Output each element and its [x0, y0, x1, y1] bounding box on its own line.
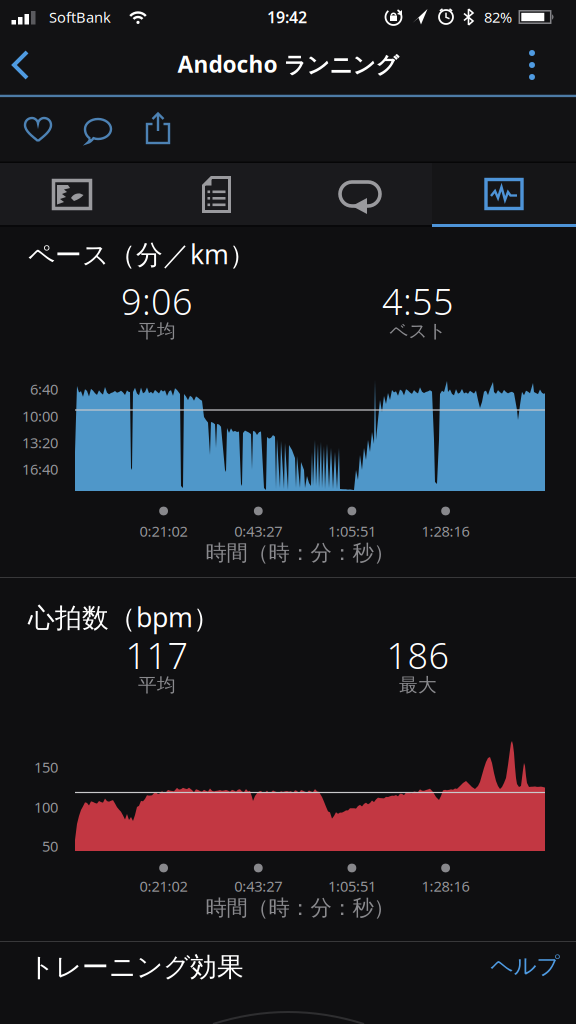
staticText: 10:00: [22, 406, 58, 426]
button[interactable]: Share: [136, 107, 180, 151]
staticText: 0:21:02: [140, 876, 188, 896]
staticText: 19:42: [267, 6, 307, 28]
staticText: 13:20: [22, 433, 58, 452]
button[interactable]: More: [517, 44, 547, 86]
button[interactable]: Stats: [144, 164, 288, 224]
staticText: 6:40: [30, 379, 58, 399]
staticText: SoftBank: [49, 7, 111, 27]
button[interactable]: Map: [0, 164, 144, 224]
staticText: 時間（時：分：秒）: [205, 540, 394, 566]
staticText: 0:21:02: [140, 521, 188, 541]
staticText: 1:28:16: [422, 521, 470, 541]
staticText: 82%: [484, 7, 512, 27]
staticText: Andocho ランニング: [177, 49, 398, 79]
staticText: 最大: [399, 673, 437, 696]
staticText: 心拍数（bpm）: [28, 599, 220, 635]
staticText: ヘルプ: [490, 952, 559, 980]
staticText: 1:05:51: [328, 876, 376, 896]
staticText: 16:40: [22, 459, 58, 479]
staticText: 50: [42, 836, 58, 856]
button[interactable]: Laps: [288, 164, 432, 224]
staticText: 186: [386, 631, 449, 679]
staticText: 1:05:51: [328, 521, 376, 541]
staticText: ペース（分／km）: [28, 236, 256, 272]
staticText: 9:06: [121, 277, 193, 325]
button[interactable]: Comment: [76, 108, 120, 152]
staticText: 0:43:27: [234, 521, 282, 541]
staticText: 0:43:27: [234, 876, 282, 896]
staticText: 117: [125, 631, 188, 679]
button[interactable]: Like: [16, 108, 60, 152]
staticText: 150: [34, 757, 58, 777]
staticText: トレーニング効果: [28, 951, 244, 983]
staticText: ベスト: [389, 319, 446, 342]
staticText: 時間（時：分：秒）: [205, 895, 394, 921]
staticText: 平均: [138, 673, 176, 696]
staticText: 4:55: [382, 277, 454, 325]
button[interactable]: Back: [6, 44, 46, 86]
staticText: 1:28:16: [422, 876, 470, 896]
button[interactable]: Charts: [432, 164, 576, 224]
staticText: 100: [34, 797, 58, 817]
staticText: 平均: [138, 319, 176, 342]
button[interactable]: ヘルプ: [477, 946, 573, 986]
